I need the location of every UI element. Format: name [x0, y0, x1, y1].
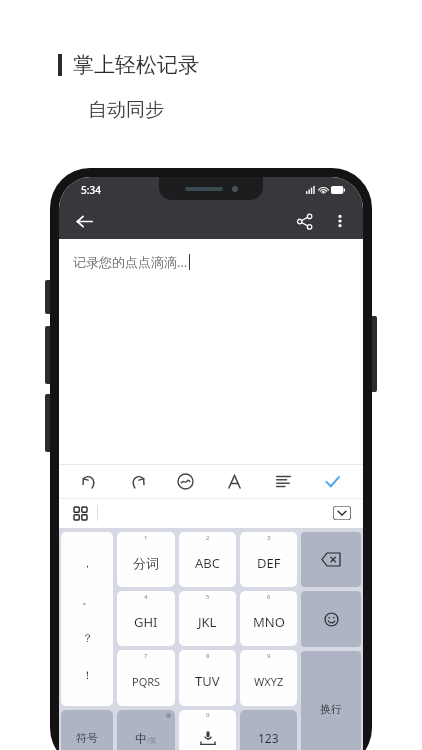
staticText: /英	[147, 736, 157, 746]
staticText: 记录您的点点滴滴…	[73, 253, 188, 271]
button[interactable]: Emoji	[301, 591, 361, 647]
staticText: ，	[82, 556, 93, 570]
button[interactable]: 4	[117, 591, 175, 646]
staticText: 3	[267, 534, 271, 542]
staticText: 9	[267, 652, 271, 660]
button[interactable]: Backspace	[301, 532, 361, 587]
staticText: 5	[206, 593, 210, 601]
staticText: 123	[258, 730, 279, 746]
button[interactable]: Text style	[210, 464, 259, 498]
button[interactable]: 换行	[301, 651, 361, 750]
button[interactable]: Space, voice input	[179, 710, 236, 750]
button[interactable]: Undo	[65, 464, 113, 498]
staticText: 掌上轻松记录	[73, 52, 199, 78]
button[interactable]: 6	[240, 591, 297, 646]
staticText: ？	[82, 631, 93, 645]
staticText: 4	[144, 593, 148, 601]
button[interactable]: More options	[325, 206, 355, 236]
button[interactable]: 符号	[61, 710, 113, 750]
button[interactable]: Share	[289, 206, 319, 236]
button[interactable]: Insert image	[161, 464, 210, 498]
staticText: 6	[267, 593, 271, 601]
staticText: JKL	[198, 613, 217, 631]
staticText: DEF	[257, 554, 281, 572]
button[interactable]: 1	[117, 532, 175, 587]
staticText: 自动同步	[88, 98, 164, 122]
staticText: ！	[82, 668, 93, 682]
button[interactable]: 8	[179, 650, 236, 706]
staticText: 5:34	[81, 183, 101, 197]
staticText: 1	[144, 534, 148, 542]
button[interactable]: Align	[259, 464, 308, 498]
staticText: 中	[135, 731, 147, 746]
button[interactable]: Redo	[113, 464, 161, 498]
staticText: 0	[206, 711, 210, 719]
staticText: 。	[82, 593, 93, 607]
button[interactable]: Keyboard panel	[67, 500, 93, 526]
staticText: 7	[144, 652, 148, 660]
button[interactable]: 7	[117, 650, 175, 706]
staticText: 分词	[133, 555, 159, 571]
staticText: GHI	[134, 613, 158, 631]
staticText: TUV	[195, 672, 220, 690]
button[interactable]: 3	[240, 532, 297, 587]
staticText: PQRS	[132, 674, 161, 689]
staticText: 8	[206, 652, 210, 660]
button[interactable]: 123	[240, 710, 297, 750]
button[interactable]: Hide keyboard	[329, 500, 355, 526]
button[interactable]: 5	[179, 591, 236, 646]
staticText: 2	[206, 534, 210, 542]
button[interactable]: 2	[179, 532, 236, 587]
button[interactable]: 9	[240, 650, 297, 706]
staticText: 换行	[320, 702, 342, 716]
button[interactable]: Done	[308, 464, 357, 498]
button[interactable]: Back	[69, 206, 99, 236]
staticText: WXYZ	[254, 674, 284, 689]
button[interactable]: ，	[61, 532, 113, 706]
staticText: 符号	[76, 731, 98, 745]
button[interactable]: 记录您的点点滴滴…	[59, 239, 363, 464]
button[interactable]: 中	[117, 710, 175, 750]
staticText: ABC	[195, 554, 220, 572]
staticText: MNO	[253, 613, 285, 631]
